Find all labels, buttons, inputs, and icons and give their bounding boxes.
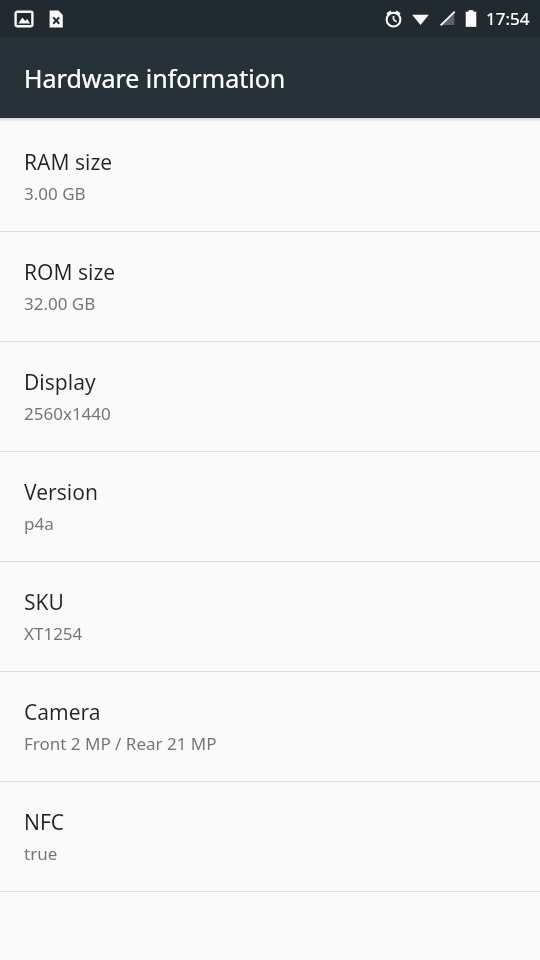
staticText: SKU (24, 588, 64, 617)
staticText: ROM size (24, 258, 116, 287)
staticText: NFC (24, 808, 65, 837)
button[interactable]: Display (0, 342, 540, 451)
button[interactable]: NFC (0, 782, 540, 891)
staticText: Camera (24, 698, 101, 727)
button[interactable]: RAM size (0, 122, 540, 231)
button[interactable]: SKU (0, 562, 540, 671)
staticText: Display (24, 368, 96, 397)
staticText: Hardware information (24, 61, 286, 95)
staticText: 17:54 (486, 7, 530, 30)
button[interactable]: Camera (0, 672, 540, 781)
button[interactable]: Version (0, 452, 540, 561)
staticText: XT1254 (24, 622, 83, 645)
staticText: p4a (24, 512, 54, 535)
staticText: 2560x1440 (24, 402, 111, 425)
staticText: Version (24, 478, 98, 507)
staticText: RAM size (24, 148, 113, 177)
staticText: Front 2 MP / Rear 21 MP (24, 732, 217, 755)
staticText: true (24, 842, 58, 865)
staticText: 3.00 GB (24, 182, 86, 205)
button[interactable]: ROM size (0, 232, 540, 341)
staticText: 32.00 GB (24, 292, 96, 315)
